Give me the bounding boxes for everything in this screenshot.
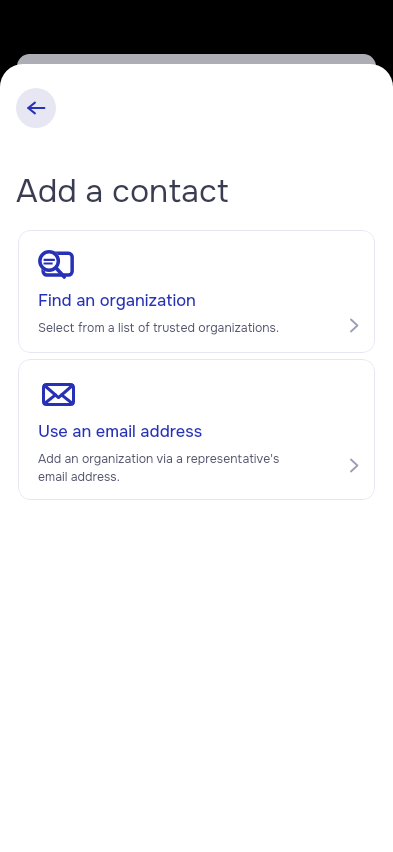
staticText: Add a contact [16,175,229,211]
button[interactable]: Back [16,88,56,128]
staticText: Select from a list of trusted organizati… [38,318,284,336]
button[interactable]: Use an email address [18,359,375,500]
staticText: Add an organization via a representative… [38,449,284,485]
staticText: Find an organization [38,291,196,311]
button[interactable]: Find an organization [18,230,375,353]
staticText: Use an email address [38,422,203,442]
